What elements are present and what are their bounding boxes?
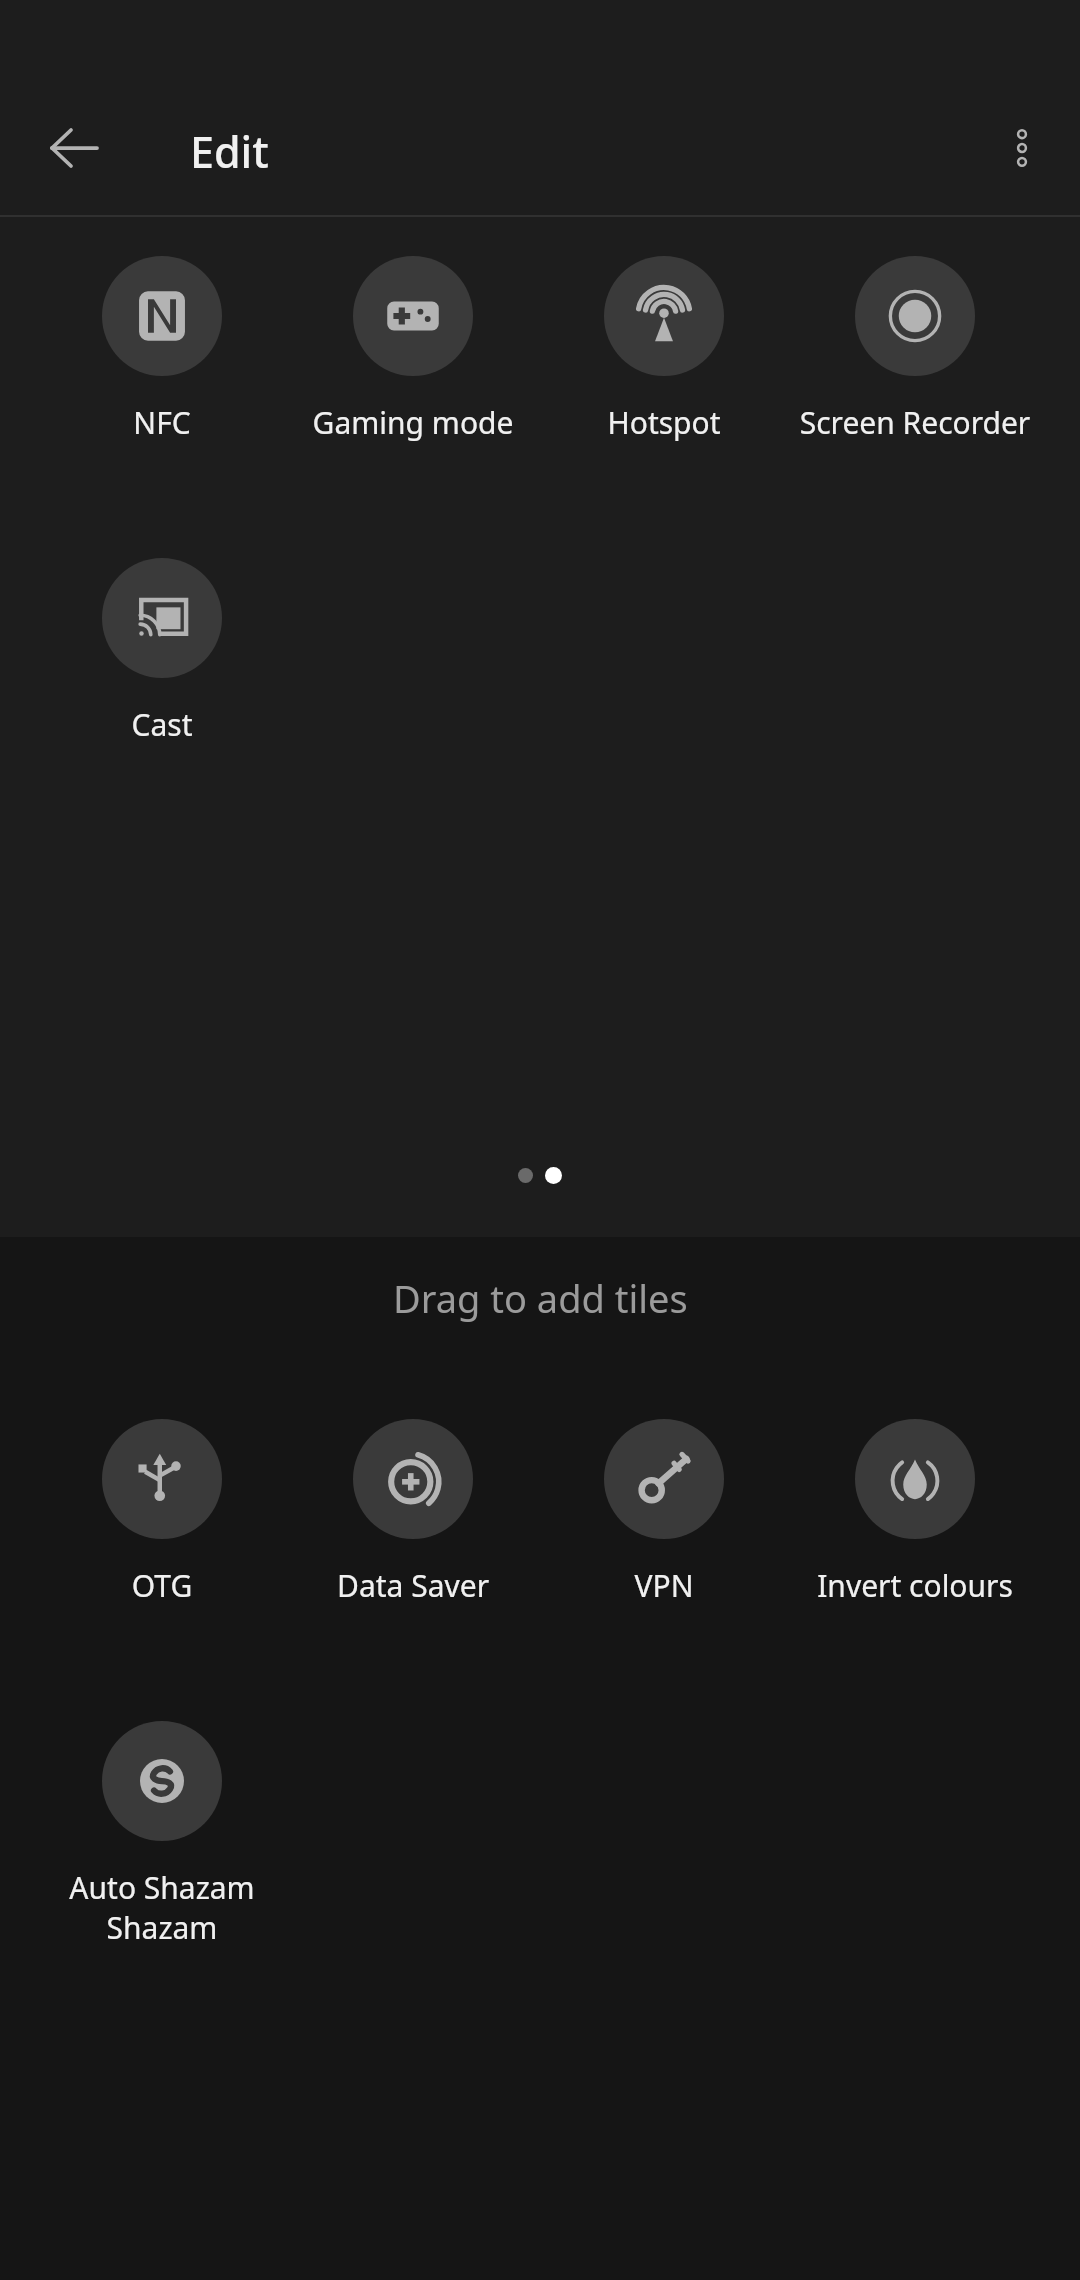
staticText: Gaming mode [293, 402, 533, 443]
button[interactable]: More options [976, 102, 1068, 194]
button[interactable]: NFC [42, 256, 282, 443]
staticText: Hotspot [544, 402, 784, 443]
button[interactable]: Hotspot [544, 256, 784, 443]
button[interactable]: Gaming mode [293, 256, 533, 443]
staticText: VPN [544, 1565, 784, 1606]
staticText: Drag to add tiles [393, 1272, 688, 1324]
button[interactable]: Auto Shazam Shazam [42, 1721, 282, 1948]
button[interactable]: Invert colours [795, 1419, 1035, 1606]
button[interactable]: VPN [544, 1419, 784, 1606]
staticText: Screen Recorder [795, 402, 1035, 443]
staticText: Cast [42, 704, 282, 745]
staticText: Edit [190, 122, 269, 181]
button[interactable]: Data Saver [293, 1419, 533, 1606]
staticText: OTG [42, 1565, 282, 1606]
staticText: NFC [42, 402, 282, 443]
staticText: Invert colours [795, 1565, 1035, 1606]
button[interactable]: Cast [42, 558, 282, 745]
button[interactable]: Back [28, 102, 120, 194]
button[interactable]: Screen Recorder [795, 256, 1035, 443]
staticText: Auto Shazam Shazam [42, 1867, 282, 1948]
staticText: Data Saver [293, 1565, 533, 1606]
button[interactable]: OTG [42, 1419, 282, 1606]
